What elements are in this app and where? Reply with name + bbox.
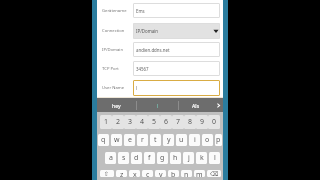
staticText: o <box>205 135 210 145</box>
button[interactable]: k <box>196 152 207 164</box>
staticText: i <box>194 135 196 145</box>
staticText: 6 <box>164 117 169 127</box>
staticText: Als <box>192 102 200 109</box>
staticText: u <box>179 135 184 145</box>
staticText: 4 <box>140 117 145 127</box>
staticText: b <box>171 170 176 177</box>
button[interactable]: 1 <box>100 115 112 129</box>
button[interactable]: e <box>124 134 135 146</box>
staticText: 8 <box>188 117 193 127</box>
staticText: w <box>114 135 120 145</box>
button[interactable]: 4 <box>136 115 148 129</box>
staticText: x <box>133 170 137 177</box>
button[interactable]: h <box>170 152 181 164</box>
button[interactable]: i <box>189 134 200 146</box>
button[interactable]: More suggestions <box>213 98 223 112</box>
staticText: t <box>154 135 157 145</box>
staticText: 2 <box>116 117 121 127</box>
button[interactable]: g <box>157 152 168 164</box>
staticText: IP/Domain <box>102 47 124 53</box>
button[interactable]: 2 <box>112 115 124 129</box>
button[interactable]: 9 <box>196 115 208 129</box>
staticText: v <box>159 170 163 177</box>
staticText: ⌫ <box>210 170 219 177</box>
button[interactable]: hey <box>97 98 136 112</box>
button[interactable]: c <box>142 170 153 177</box>
staticText: y <box>167 135 171 145</box>
button[interactable]: f <box>144 152 155 164</box>
button[interactable]: 7 <box>172 115 184 129</box>
button[interactable]: ⌫ <box>207 170 221 177</box>
button[interactable]: o <box>202 134 213 146</box>
button[interactable]: TCP Port <box>97 59 223 78</box>
button[interactable]: m <box>194 170 205 177</box>
button[interactable]: w <box>111 134 122 146</box>
staticText: d <box>134 153 139 163</box>
button[interactable]: j <box>183 152 194 164</box>
staticText: Gerätename <box>102 8 127 14</box>
button[interactable]: 3 <box>124 115 136 129</box>
button[interactable]: v <box>155 170 166 177</box>
button[interactable]: u <box>176 134 187 146</box>
button[interactable]: 6 <box>160 115 172 129</box>
button[interactable]: User Name <box>97 78 223 97</box>
staticText: hey <box>112 102 121 109</box>
staticText: User Name <box>102 85 125 91</box>
staticText: z <box>120 170 124 177</box>
other: Expand <box>212 23 220 39</box>
staticText: 5 <box>152 117 157 127</box>
staticText: Ems <box>136 8 145 14</box>
button[interactable]: ⇧ <box>100 170 114 177</box>
button[interactable]: b <box>168 170 179 177</box>
button[interactable]: l <box>137 98 178 112</box>
button[interactable]: Connection <box>97 21 223 40</box>
staticText: 9 <box>200 117 205 127</box>
staticText: n <box>184 170 189 177</box>
staticText: p <box>216 135 221 145</box>
staticText: r <box>141 135 144 145</box>
button[interactable]: r <box>137 134 148 146</box>
staticText: Connection <box>102 28 125 34</box>
staticText: 1 <box>104 117 109 127</box>
button[interactable]: 5 <box>148 115 160 129</box>
staticText: ⇧ <box>104 170 110 177</box>
button[interactable]: 8 <box>184 115 196 129</box>
staticText: j <box>188 153 190 163</box>
button[interactable]: Gerätename <box>97 0 223 21</box>
staticText: k <box>200 153 204 163</box>
button[interactable]: d <box>131 152 142 164</box>
staticText: 0 <box>212 117 217 127</box>
staticText: s <box>122 153 126 163</box>
button[interactable]: y <box>163 134 174 146</box>
button[interactable]: 0 <box>208 115 220 129</box>
button[interactable]: s <box>118 152 129 164</box>
button[interactable]: x <box>129 170 140 177</box>
button[interactable]: Als <box>179 98 213 112</box>
staticText: 34567 <box>136 66 149 72</box>
button[interactable]: t <box>150 134 161 146</box>
button[interactable]: IP/Domain <box>133 23 220 39</box>
staticText: e <box>128 135 132 145</box>
staticText: a <box>109 153 113 163</box>
button[interactable]: p <box>215 134 222 146</box>
staticText: IP/Domain <box>136 28 159 34</box>
staticText: l <box>157 102 159 109</box>
staticText: c <box>146 170 150 177</box>
button[interactable]: IP/Domain <box>97 40 223 59</box>
button[interactable]: q <box>98 134 109 146</box>
staticText: andien.ddns.net <box>136 47 170 53</box>
button[interactable]: a <box>105 152 116 164</box>
staticText: l <box>214 153 216 163</box>
staticText: 3 <box>128 117 133 127</box>
button[interactable]: z <box>116 170 127 177</box>
button[interactable]: n <box>181 170 192 177</box>
staticText: l <box>136 85 138 91</box>
button[interactable]: l <box>209 152 220 164</box>
staticText: m <box>196 170 203 177</box>
staticText: h <box>173 153 178 163</box>
staticText: 7 <box>176 117 181 127</box>
staticText: q <box>101 135 106 145</box>
staticText: TCP Port <box>102 66 119 72</box>
staticText: f <box>148 153 151 163</box>
staticText: g <box>160 153 165 163</box>
